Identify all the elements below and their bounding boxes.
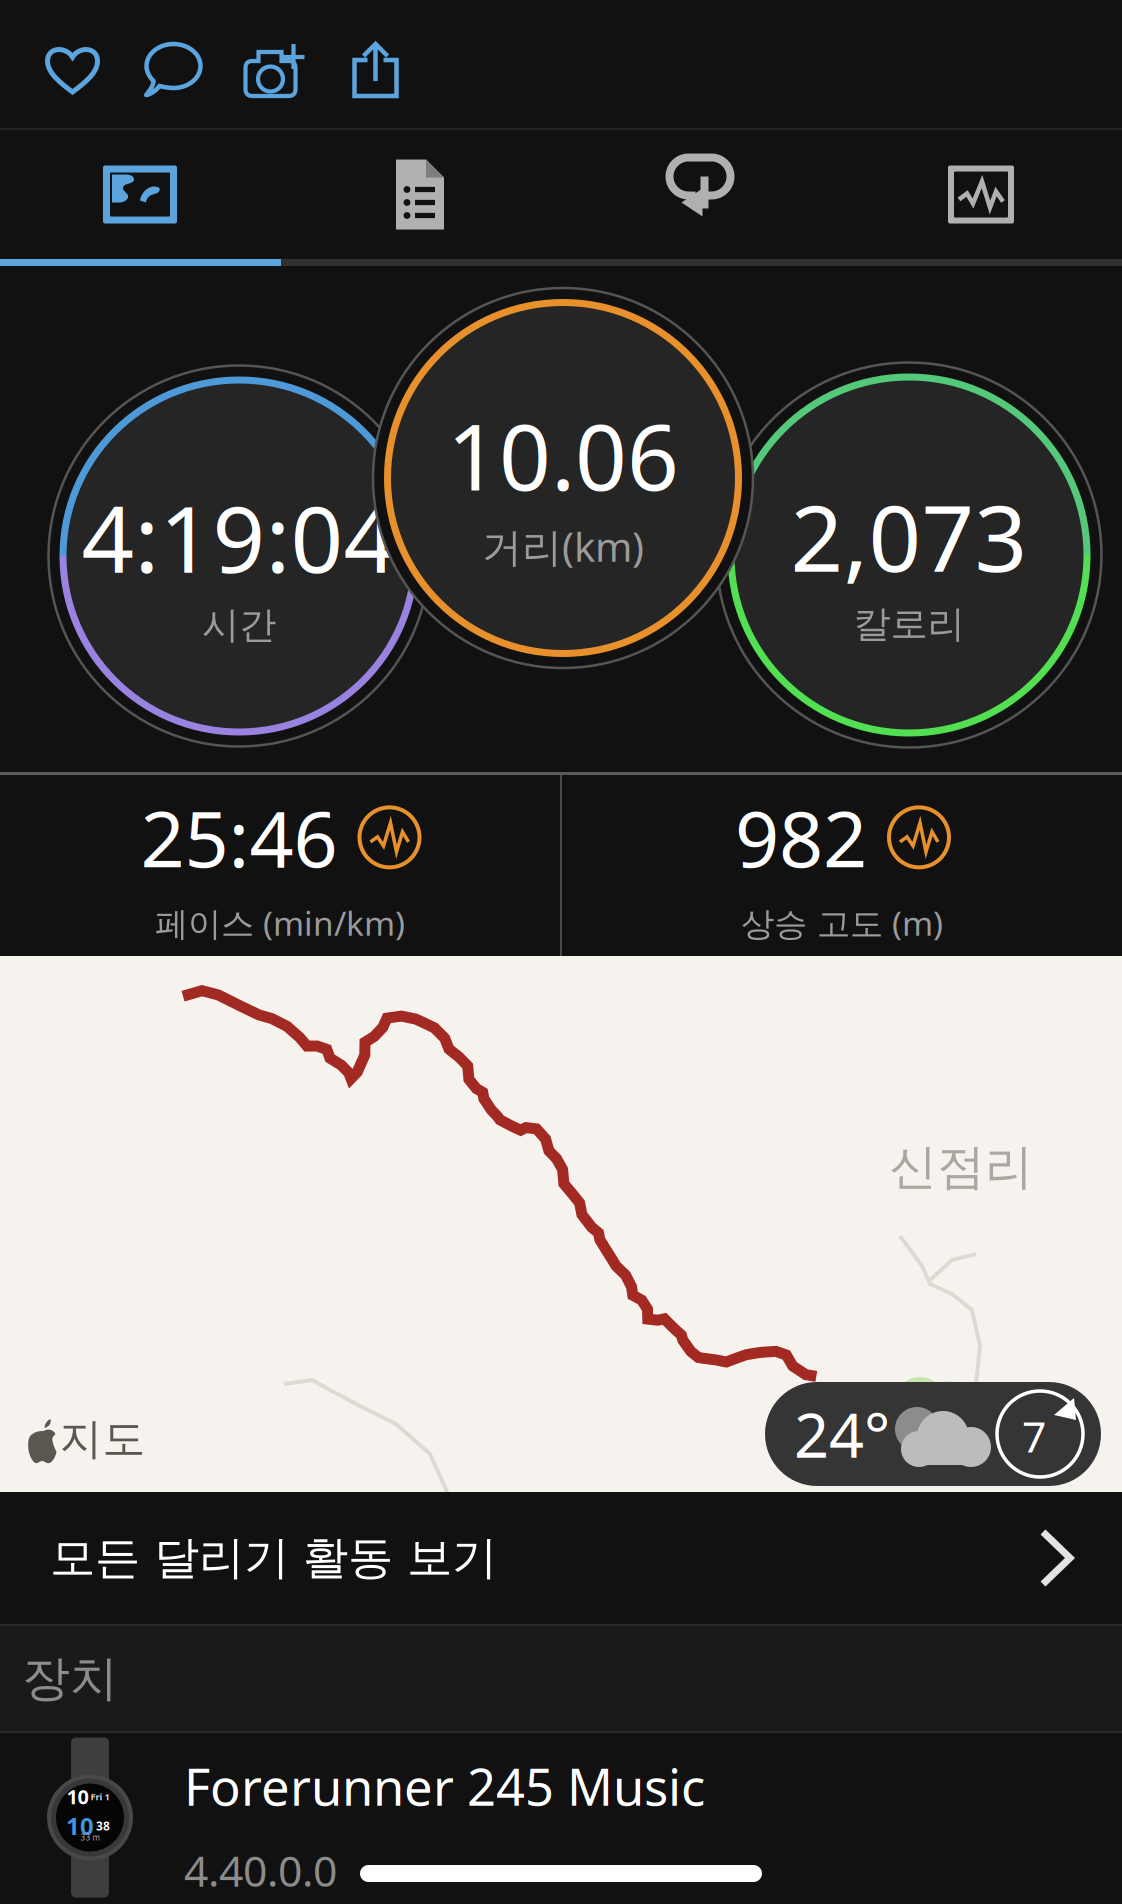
staticText: Forerunner 245 Music xyxy=(184,1752,705,1820)
staticText: 10 xyxy=(66,1810,94,1842)
staticText: 2,073 xyxy=(790,475,1027,597)
staticText: 시간 xyxy=(202,602,276,648)
staticText: 25:46 xyxy=(140,786,337,889)
staticText: 페이스 (min/km) xyxy=(155,901,405,945)
staticText: 10 xyxy=(66,1783,88,1810)
staticText: 4.40.0.0 xyxy=(184,1842,337,1898)
button[interactable]: 10 xyxy=(0,1733,1122,1902)
staticText: 38 xyxy=(96,1818,110,1834)
button[interactable]: 모든 달리기 활동 보기 xyxy=(0,1492,1122,1624)
staticText: 10.06 xyxy=(447,395,679,516)
staticText: 칼로리 xyxy=(853,601,964,647)
staticText: 상승 고도 (m) xyxy=(741,901,943,945)
staticText: 지도 xyxy=(59,1413,145,1465)
button[interactable]: Share xyxy=(325,6,426,134)
button[interactable]: Add photo xyxy=(224,6,325,134)
button[interactable]: Map xyxy=(0,130,280,259)
staticText: 거리(km) xyxy=(482,520,644,573)
staticText: 33 m xyxy=(80,1832,99,1843)
button[interactable]: Laps xyxy=(560,130,840,259)
staticText: 4:19:04 xyxy=(81,476,396,598)
staticText: 7 xyxy=(1022,1408,1046,1464)
button[interactable]: Details xyxy=(280,130,560,259)
button[interactable]: Comment xyxy=(123,6,224,134)
button[interactable]: Charts xyxy=(840,130,1122,259)
staticText: 장치 xyxy=(22,1649,118,1708)
staticText: Fri 1 xyxy=(90,1790,109,1803)
staticText: 24° xyxy=(794,1393,890,1475)
staticText: 982 xyxy=(735,786,867,889)
staticText: 신점리 xyxy=(889,1137,1033,1196)
staticText: 모든 달리기 활동 보기 xyxy=(50,1530,497,1586)
button[interactable]: Like xyxy=(22,6,123,134)
